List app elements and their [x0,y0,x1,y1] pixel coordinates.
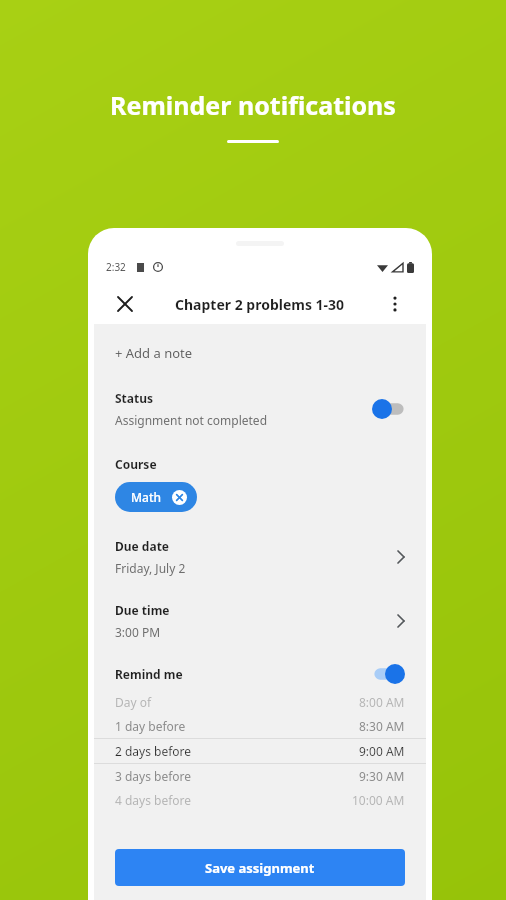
staticText: Course [115,456,157,472]
staticText: 3:00 PM [115,624,161,640]
staticText: 9:30 AM [359,768,405,784]
button[interactable]: Toggle off [371,399,405,419]
button[interactable]: Math [115,482,197,512]
button[interactable]: Save assignment [115,849,405,886]
staticText: Chapter 2 problems 1-30 [175,295,345,314]
button[interactable]: 4 days before [94,788,426,812]
staticText: Day of [115,694,359,710]
button[interactable]: Due date [94,536,426,578]
staticText: 2 days before [115,743,359,759]
staticText: Due date [115,538,170,554]
button[interactable]: 1 day before [94,714,426,738]
staticText: 2:32 [106,260,126,274]
staticText: Remind me [115,666,371,682]
button[interactable]: Close [112,291,138,317]
staticText: Friday, July 2 [115,560,186,576]
button[interactable]: + Add a note [94,340,214,366]
button[interactable]: Toggle on [371,664,405,684]
button[interactable]: Day of [94,690,426,714]
staticText: Status [115,390,154,406]
button[interactable]: 3 days before [94,764,426,788]
staticText: 1 day before [115,718,359,734]
button[interactable]: Remind me [94,664,426,684]
staticText: Math [131,489,162,505]
button[interactable]: 2 days before [94,739,426,763]
staticText: 4 days before [115,792,352,808]
button[interactable]: Status [94,388,426,430]
staticText: 8:00 AM [359,694,405,710]
staticText: 3 days before [115,768,359,784]
staticText: Due time [115,602,170,618]
staticText: Assignment not completed [115,412,268,428]
button[interactable]: More options [382,291,408,317]
staticText: 9:00 AM [359,743,405,759]
button[interactable]: Due time [94,600,426,642]
staticText: Save assignment [205,859,315,877]
staticText: 8:30 AM [359,718,405,734]
staticText: Reminder notifications [0,88,506,122]
staticText: 10:00 AM [352,792,405,808]
